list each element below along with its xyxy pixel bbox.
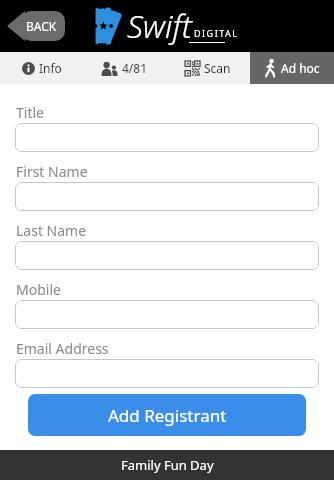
button[interactable] (15, 300, 319, 329)
button[interactable] (15, 241, 319, 270)
staticText: Ad hoc (281, 60, 320, 76)
staticText: Title (16, 103, 44, 122)
staticText: Mobile (16, 280, 61, 299)
staticText: Last Name (16, 221, 87, 240)
button[interactable] (15, 182, 319, 211)
button[interactable]: Ad hoc (250, 52, 334, 84)
staticText: BACK (26, 18, 57, 34)
button[interactable]: BACK (7, 11, 65, 41)
button[interactable] (15, 123, 319, 152)
staticText: Family Fun Day (121, 456, 214, 474)
staticText: 4/81 (122, 60, 148, 76)
button[interactable]: Scan (166, 52, 250, 84)
staticText: Swift (127, 4, 192, 48)
button[interactable]: Add Registrant (28, 394, 306, 436)
staticText: Add Registrant (108, 404, 227, 427)
staticText: First Name (16, 162, 88, 181)
button[interactable]: Info (0, 52, 83, 84)
staticText: Info (39, 60, 62, 76)
staticText: Email Address (16, 339, 109, 358)
staticText: Scan (204, 60, 231, 76)
button[interactable]: 4/81 (83, 52, 166, 84)
button[interactable] (15, 359, 319, 388)
staticText: DIGITAL (194, 27, 239, 39)
